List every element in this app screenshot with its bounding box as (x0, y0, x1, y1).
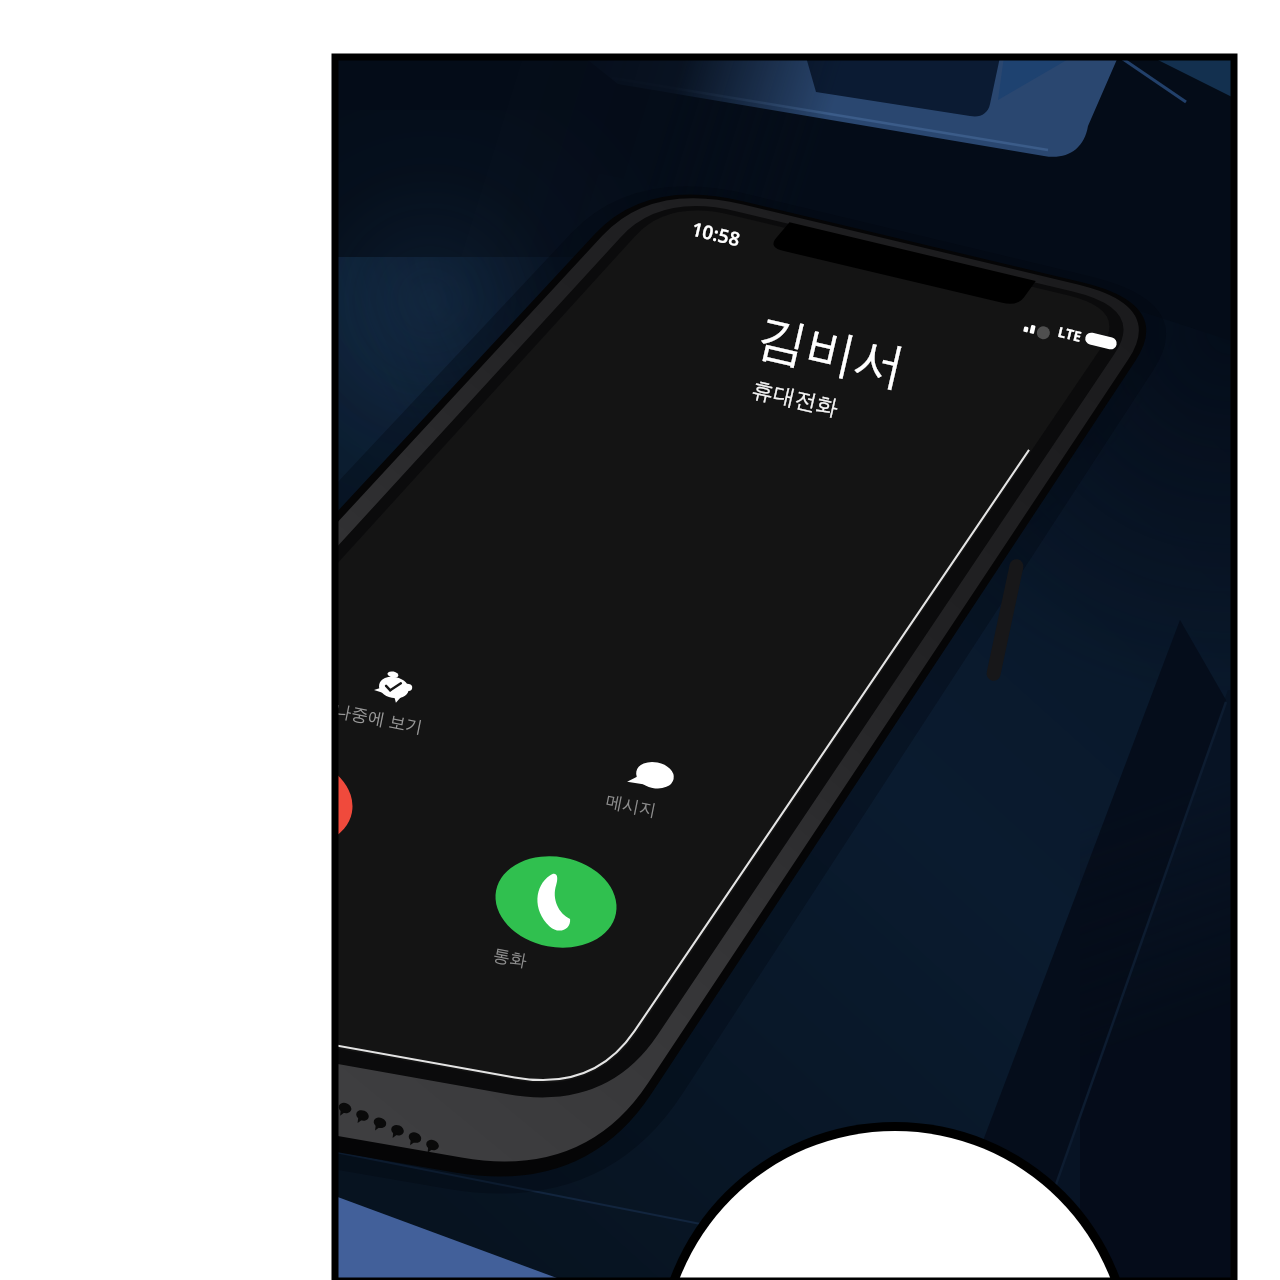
button[interactable] (0, 0, 1280, 1280)
